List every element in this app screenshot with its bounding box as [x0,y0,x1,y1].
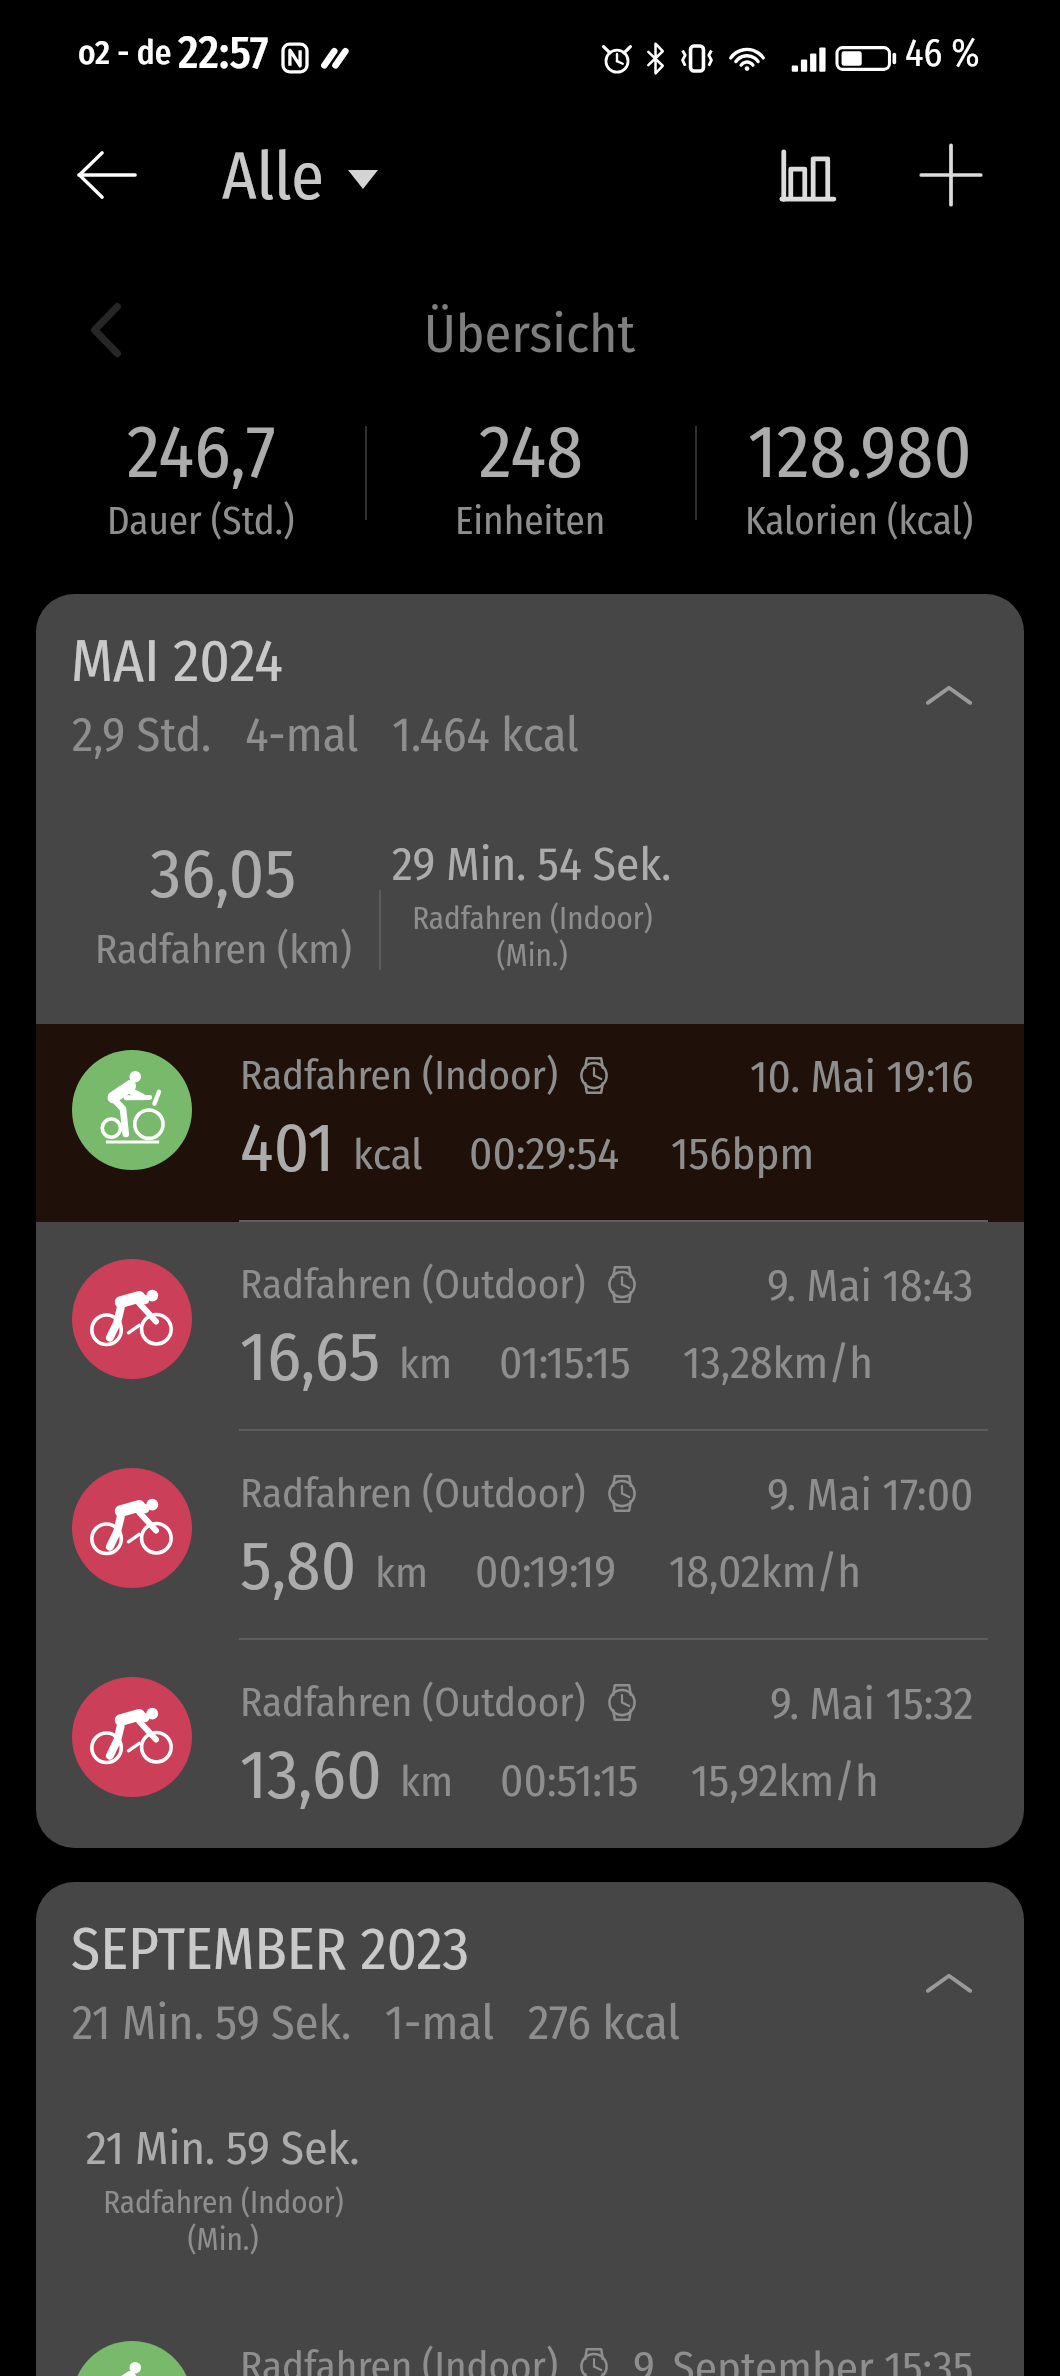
staticText: MAI 2024 [71,626,283,697]
button[interactable]: 248 [366,408,695,545]
staticText: 13,60 [240,1733,382,1816]
button[interactable]: Alle [206,120,394,231]
staticText: kcal [353,1129,423,1181]
button[interactable]: Radfahren (Indoor) [36,2304,1024,2376]
staticText: Radfahren (Indoor) [240,1051,558,1100]
staticText: 00:51:15 [500,1754,639,1808]
staticText: 401 [240,1106,335,1189]
staticText: 29 Min. 54 Sek. [392,836,672,892]
staticText: 22:57 [178,26,269,80]
staticText: km [399,1338,453,1390]
staticText: SEPTEMBER 2023 [71,1914,470,1985]
staticText: 9. Mai 18:43 [767,1259,974,1313]
staticText: 00:29:54 [469,1127,619,1181]
button[interactable]: Radfahren (Outdoor) [36,1640,1024,1848]
button[interactable]: 246,7 [36,408,366,545]
button[interactable]: 128.980 [695,408,1024,545]
staticText: 9. Mai 17:00 [767,1468,974,1522]
staticText: 00:19:19 [475,1545,617,1599]
button[interactable]: Statistics [759,127,855,223]
button[interactable]: Back [62,130,152,220]
staticText: 9. Mai 15:32 [770,1677,974,1731]
staticText: Radfahren (Outdoor) [240,1469,586,1518]
staticText: o2 - de [78,33,172,73]
staticText: Kalorien (kcal) [745,498,974,545]
staticText: 01:15:15 [499,1336,631,1390]
staticText: 21 Min. 59 Sek. 1-mal 276 kcal [72,1994,680,2052]
staticText: Radfahren (km) [95,925,352,974]
staticText: Einheiten [455,498,606,545]
staticText: 9. September 15:35 [633,2341,974,2376]
button[interactable]: Radfahren (Indoor) [36,1024,1024,1222]
staticText: 16,65 [240,1315,381,1398]
staticText: (Min.) [187,2221,259,2258]
staticText: 5,80 [240,1524,357,1607]
button[interactable]: Radfahren (Outdoor) [36,1222,1024,1431]
staticText: Radfahren (Outdoor) [240,1678,586,1727]
staticText: 10. Mai 19:16 [750,1050,974,1104]
staticText: (Min.) [496,937,568,974]
button[interactable]: Collapse [909,1943,989,2023]
staticText: 246,7 [127,408,276,497]
button[interactable]: Radfahren (Outdoor) [36,1431,1024,1640]
staticText: Alle [222,137,324,216]
staticText: km [375,1547,429,1599]
staticText: km [400,1756,454,1808]
staticText: Übersicht [424,302,636,367]
staticText: Dauer (Std.) [107,498,295,545]
staticText: Radfahren (Outdoor) [240,1260,586,1309]
button[interactable]: Previous period [66,290,146,370]
staticText: 128.980 [748,408,972,497]
staticText: 21 Min. 59 Sek. [86,2120,360,2176]
button[interactable]: Collapse [909,655,989,735]
staticText: 15,92km/h [691,1754,879,1808]
staticText: Radfahren (Indoor) [412,900,653,937]
staticText: 46 % [905,30,980,76]
staticText: 18,02km/h [669,1545,862,1599]
staticText: 36,05 [150,832,297,915]
button[interactable]: Add [903,127,999,223]
staticText: 156bpm [671,1127,815,1181]
staticText: 248 [479,408,583,497]
staticText: 13,28km/h [683,1336,873,1390]
staticText: Radfahren (Indoor) [103,2184,344,2221]
staticText: 2,9 Std. 4-mal 1.464 kcal [72,706,579,764]
staticText: Radfahren (Indoor) [240,2342,558,2376]
